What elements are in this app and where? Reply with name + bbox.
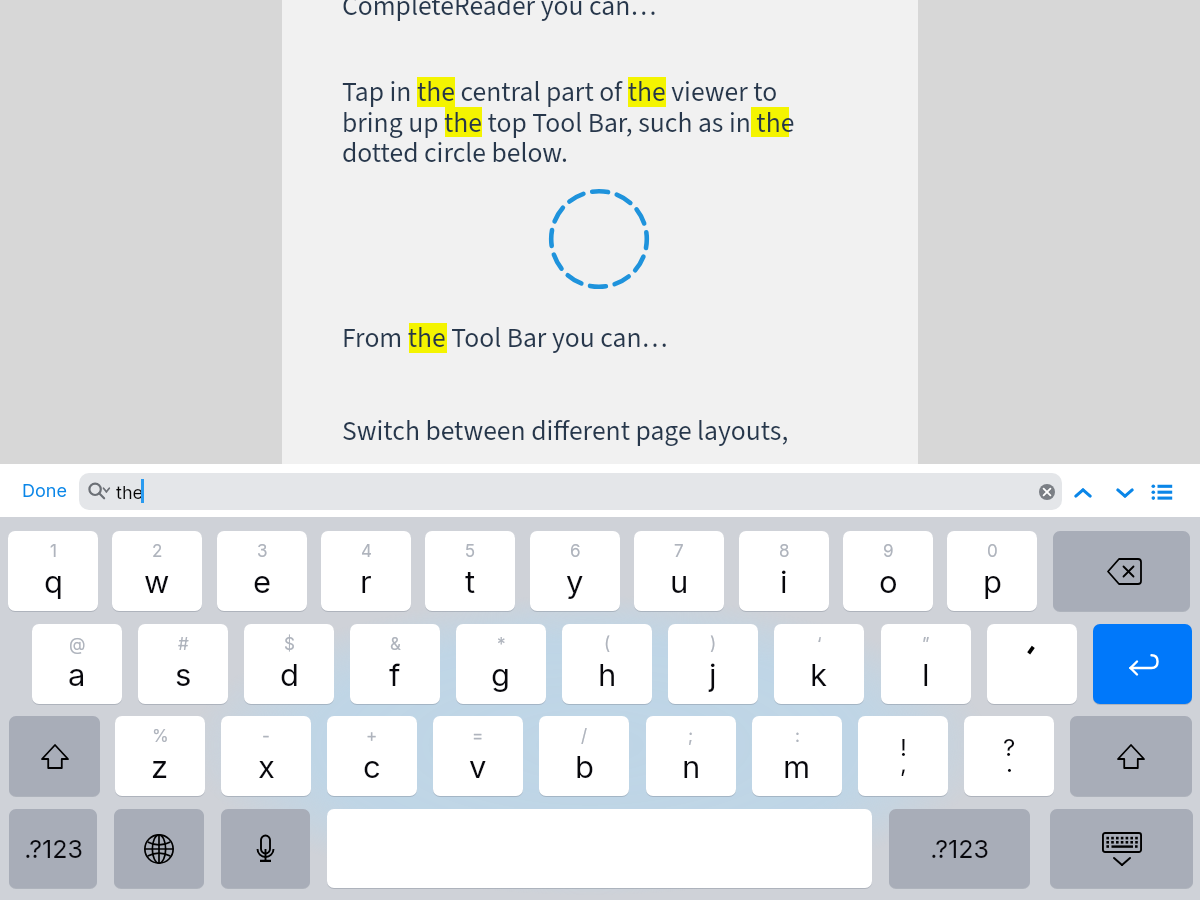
staticText: o (879, 563, 898, 601)
button[interactable]: Return (1093, 624, 1192, 704)
staticText: 5 (465, 541, 476, 562)
button[interactable]: ” (881, 624, 971, 704)
staticText: q (44, 563, 63, 601)
button[interactable]: Done (16, 472, 72, 510)
button[interactable]: Search results list (1149, 484, 1175, 504)
button[interactable]: .?123 (9, 809, 97, 888)
button[interactable]: 1 (8, 531, 98, 611)
button[interactable]: 2 (112, 531, 202, 611)
staticText: t (465, 563, 476, 601)
staticText: ) (710, 634, 717, 655)
button[interactable]: 3 (217, 531, 307, 611)
other: Hide keyboard (1102, 832, 1142, 866)
button[interactable]: Shift (9, 716, 100, 796)
button[interactable]: .?123 (889, 809, 1030, 888)
staticText: ; (688, 726, 694, 747)
button[interactable]: % (115, 716, 205, 796)
staticText: s (175, 656, 192, 694)
button[interactable]: & (350, 624, 440, 704)
staticText: y (566, 563, 584, 601)
button[interactable]: Shift (1070, 716, 1192, 796)
button[interactable]: * (456, 624, 546, 704)
staticText: g (491, 656, 511, 694)
other: Switch keyboard (144, 834, 174, 864)
staticText: c (363, 748, 381, 786)
other: Shift (1117, 744, 1145, 769)
button[interactable]: Hide keyboard (1050, 809, 1193, 888)
button[interactable]: @ (32, 624, 122, 704)
button[interactable]: # (138, 624, 228, 704)
staticText: % (152, 726, 169, 747)
staticText: a (68, 656, 86, 694)
button[interactable]: 4 (321, 531, 411, 611)
button[interactable]: 9 (843, 531, 933, 611)
button[interactable]: ) (668, 624, 758, 704)
button[interactable]: Backspace (1053, 531, 1190, 611)
staticText: n (682, 748, 701, 786)
staticText: 2 (152, 541, 163, 562)
button[interactable]: / (539, 716, 629, 796)
staticText: 7 (674, 541, 684, 562)
button[interactable]: + (327, 716, 417, 796)
staticText: 1 (50, 541, 57, 562)
button[interactable]: Switch keyboard (114, 809, 204, 888)
button[interactable]: $ (244, 624, 334, 704)
staticText: * (497, 634, 506, 655)
button[interactable] (987, 624, 1077, 704)
staticText: 8 (779, 541, 790, 562)
staticText: @ (69, 634, 86, 655)
staticText: d (280, 656, 299, 694)
button[interactable]: ; (646, 716, 736, 796)
button[interactable]: Dictation (221, 809, 310, 888)
button[interactable]: = (433, 716, 523, 796)
staticText: - (262, 726, 270, 747)
button[interactable]: : (752, 716, 842, 796)
staticText: r (360, 563, 372, 601)
staticText: k (810, 656, 828, 694)
staticText: From the Tool Bar you can… (342, 319, 668, 358)
staticText: the (116, 482, 144, 504)
staticText: : (795, 726, 800, 747)
staticText: Switch between different page layouts, (342, 412, 789, 451)
staticText: & (390, 634, 401, 655)
button[interactable]: ! (858, 716, 948, 796)
button[interactable]: ( (562, 624, 652, 704)
staticText: + (366, 726, 378, 747)
staticText: w (144, 563, 170, 601)
button[interactable]: ? (964, 716, 1054, 796)
staticText: f (389, 656, 401, 694)
staticText: p (983, 563, 1002, 601)
staticText: j (709, 656, 717, 694)
staticText: l (922, 656, 930, 694)
staticText: z (151, 748, 169, 786)
staticText: h (598, 656, 617, 694)
other: Backspace (1108, 559, 1141, 584)
staticText: m (783, 748, 811, 786)
staticText: # (178, 634, 189, 655)
staticText: $ (284, 634, 295, 655)
button[interactable]: 6 (530, 531, 620, 611)
button[interactable]: - (221, 716, 311, 796)
button[interactable]: the (79, 473, 1062, 510)
staticText: CompleteReader you can… (342, 0, 657, 26)
staticText: 4 (361, 541, 372, 562)
button[interactable]: 5 (425, 531, 515, 611)
button[interactable]: Next match (1108, 476, 1142, 510)
button[interactable]: 8 (739, 531, 829, 611)
staticText: , (900, 749, 907, 778)
staticText: 9 (883, 541, 894, 562)
button[interactable]: Previous match (1066, 476, 1100, 510)
staticText: i (780, 563, 788, 601)
button[interactable]: ‘ (774, 624, 864, 704)
staticText: 0 (987, 541, 998, 562)
staticText: / (581, 726, 588, 747)
button[interactable]: 7 (634, 531, 724, 611)
staticText: 6 (570, 541, 581, 562)
staticText: u (670, 563, 689, 601)
staticText: Done (22, 480, 67, 502)
button[interactable]: Clear text (1039, 484, 1055, 500)
button[interactable]: 0 (947, 531, 1037, 611)
staticText: . (1006, 749, 1013, 778)
staticText: .?123 (930, 834, 989, 864)
